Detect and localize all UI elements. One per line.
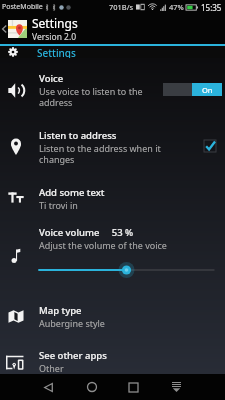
button[interactable]: Map type (0, 290, 225, 336)
button[interactable]: See other apps (0, 336, 225, 374)
button[interactable]: Voice (0, 58, 225, 115)
staticText: 701B/s (109, 2, 134, 12)
staticText: Version 2.0 (32, 31, 77, 43)
staticText: Listen to the address when it changes (39, 142, 161, 166)
staticText: Settings (37, 46, 76, 58)
button[interactable]: Home (79, 374, 105, 400)
staticText: Voice (39, 72, 64, 85)
staticText: Adjust the volume of the voice (39, 239, 167, 251)
button[interactable]: Back (35, 374, 61, 400)
staticText: See other apps (39, 349, 107, 362)
staticText: Other (39, 362, 64, 374)
staticText: 15:35 (201, 2, 222, 13)
staticText: Listen to address (39, 129, 117, 142)
staticText: Add some text (39, 186, 105, 199)
button[interactable]: Settings (0, 46, 225, 58)
staticText: Settings (32, 15, 78, 31)
staticText: Voice volume 53 % (39, 226, 134, 239)
staticText: Aubergine style (39, 317, 105, 329)
button[interactable]: Add some text (0, 172, 225, 213)
button[interactable]: Voice volume 53 % (0, 213, 225, 290)
staticText: Ti trovi in (39, 199, 78, 211)
button[interactable]: Listen to address enabled (204, 140, 216, 152)
staticText: On (202, 85, 213, 95)
button[interactable]: Hide keyboard (163, 374, 189, 400)
button[interactable]: Navigate up (0, 14, 8, 44)
staticText: 47% (169, 2, 184, 12)
button[interactable]: Listen to address (0, 115, 225, 172)
button[interactable]: Recent apps (120, 374, 146, 400)
staticText: Map type (39, 304, 82, 317)
staticText: Use voice to listen to the address (39, 85, 161, 109)
staticText: PosteMobile (2, 2, 43, 12)
button[interactable]: Voice on (163, 83, 222, 96)
